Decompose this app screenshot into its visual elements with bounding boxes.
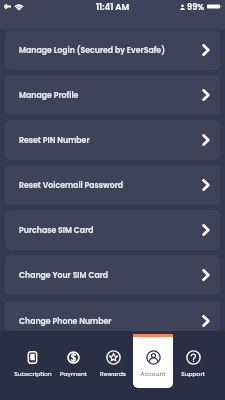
button[interactable]: Subscription: [12, 331, 53, 400]
staticText: Rewards: [100, 370, 126, 378]
button[interactable]: Change Your SIM Card: [5, 255, 220, 295]
button[interactable]: Account: [133, 334, 173, 388]
staticText: Change Phone Number: [19, 316, 112, 327]
button[interactable]: Payment: [53, 331, 93, 400]
button[interactable]: Manage Login (Secured by EverSafe): [5, 30, 220, 70]
staticText: 99%: [187, 1, 205, 12]
staticText: Account: [140, 370, 166, 378]
staticText: Manage Login (Secured by EverSafe): [19, 45, 165, 56]
button[interactable]: Reset Voicemail Password: [5, 165, 220, 205]
button[interactable]: Purchase SIM Card: [5, 210, 220, 250]
staticText: 11:41 AM: [96, 1, 130, 13]
button[interactable]: Support: [173, 331, 213, 400]
staticText: Manage Profile: [19, 90, 79, 101]
staticText: Purchase SIM Card: [19, 225, 94, 236]
staticText: Reset PIN Number: [19, 135, 90, 146]
button[interactable]: Manage Profile: [5, 75, 220, 115]
staticText: Change Your SIM Card: [19, 270, 109, 281]
button[interactable]: Change Phone Number: [5, 301, 220, 331]
staticText: Payment: [60, 370, 87, 378]
staticText: Support: [181, 370, 205, 378]
button[interactable]: Rewards: [93, 331, 133, 400]
staticText: Subscription: [14, 370, 52, 378]
staticText: Reset Voicemail Password: [19, 180, 124, 191]
button[interactable]: Reset PIN Number: [5, 120, 220, 160]
